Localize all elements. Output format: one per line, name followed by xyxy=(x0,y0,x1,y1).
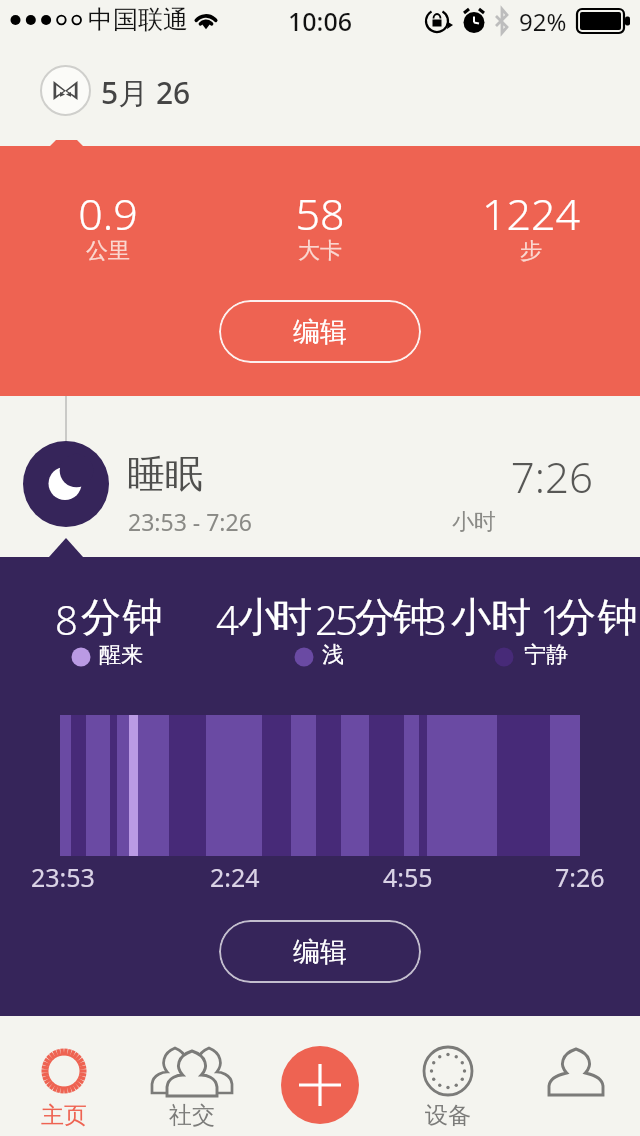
staticText: 2 xyxy=(315,592,338,646)
staticText: 公里 xyxy=(8,237,208,265)
button[interactable]: Profile xyxy=(512,1016,640,1136)
staticText: 大卡 xyxy=(220,237,420,265)
staticText: 7:26 xyxy=(555,860,605,894)
staticText: 5 xyxy=(335,592,358,646)
staticText: 编辑 xyxy=(293,315,347,349)
staticText: 8 xyxy=(55,592,78,646)
staticText: 10:06 xyxy=(288,4,353,38)
staticText: 58 xyxy=(220,184,420,243)
button[interactable]: 编辑 xyxy=(219,300,421,363)
staticText: 编辑 xyxy=(293,935,347,969)
button[interactable]: 5月 26 xyxy=(0,42,640,146)
staticText: 小 xyxy=(238,592,278,642)
staticText: 钟 xyxy=(598,592,638,642)
staticText: 小 xyxy=(451,592,491,642)
staticText: 2:24 xyxy=(210,860,260,894)
staticText: 分 xyxy=(556,592,596,642)
staticText: 设备 xyxy=(384,1101,512,1130)
button[interactable]: 睡眠 xyxy=(0,396,640,557)
staticText: 23:53 - 7:26 xyxy=(128,506,252,537)
staticText: 23:53 xyxy=(31,860,95,894)
staticText: 醒来 xyxy=(99,641,143,669)
button[interactable]: 编辑 xyxy=(219,920,421,983)
staticText: 时 xyxy=(491,592,531,642)
staticText: 4:55 xyxy=(383,860,433,894)
staticText: 步 xyxy=(431,237,631,265)
staticText: 钟 xyxy=(123,592,163,642)
button[interactable]: Add xyxy=(281,1046,359,1124)
staticText: 社交 xyxy=(128,1101,256,1130)
button[interactable]: 社交 xyxy=(128,1016,256,1136)
button[interactable]: 设备 xyxy=(384,1016,512,1136)
staticText: 4 xyxy=(216,592,239,646)
staticText: 3 xyxy=(424,592,447,646)
staticText: 浅 xyxy=(322,641,344,669)
staticText: 5月 26 xyxy=(101,72,191,113)
button[interactable]: 主页 xyxy=(0,1016,128,1136)
staticText: 睡眠 xyxy=(127,450,203,498)
staticText: 7:26 xyxy=(393,448,593,505)
staticText: 主页 xyxy=(0,1101,128,1130)
staticText: 1 xyxy=(540,592,563,646)
staticText: 中国联通 xyxy=(88,4,188,35)
staticText: 分 xyxy=(81,592,121,642)
staticText: 时 xyxy=(272,592,312,642)
staticText: 0.9 xyxy=(8,184,208,243)
staticText: 1224 xyxy=(431,184,631,243)
staticText: 钟 xyxy=(393,592,433,642)
staticText: 宁静 xyxy=(524,641,568,669)
staticText: 小时 xyxy=(452,508,496,536)
staticText: 分 xyxy=(355,592,395,642)
staticText: 92% xyxy=(519,5,567,38)
